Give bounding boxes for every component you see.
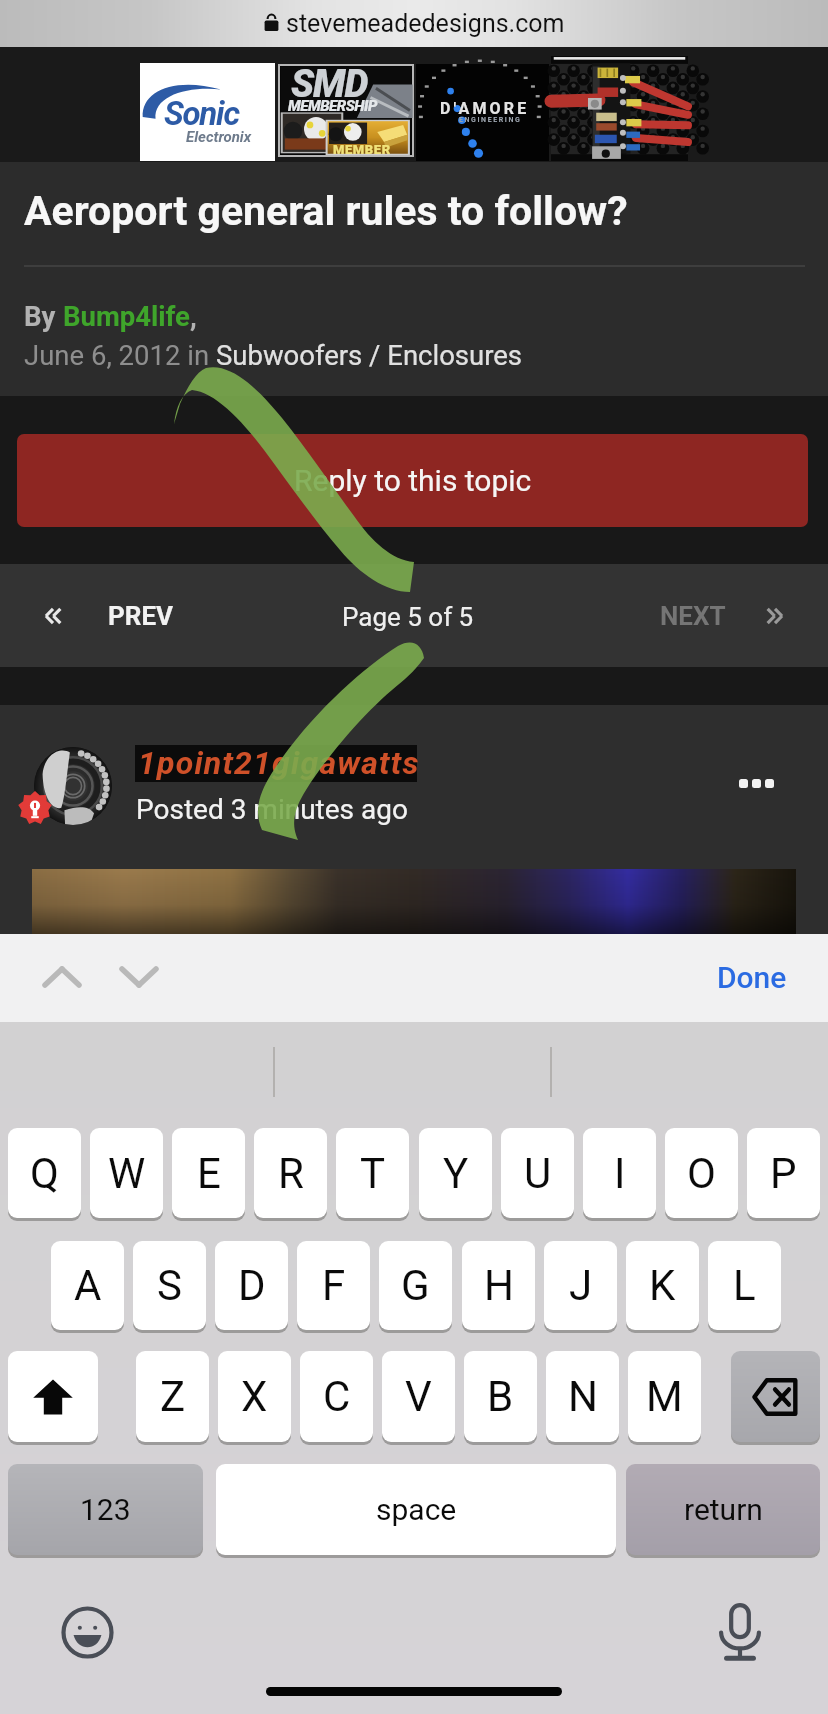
button[interactable]: A: [51, 1241, 124, 1330]
staticText: O: [687, 1149, 716, 1198]
button[interactable]: W: [90, 1128, 163, 1218]
staticText: 123: [80, 1492, 131, 1527]
button[interactable]: U: [501, 1128, 574, 1218]
staticText: Page 5 of 5: [342, 602, 474, 632]
staticText: J: [569, 1261, 593, 1310]
staticText: C: [323, 1372, 351, 1421]
button[interactable]: E: [172, 1128, 245, 1218]
staticText: W: [108, 1149, 146, 1198]
staticText: K: [649, 1261, 676, 1310]
button[interactable]: Shift: [8, 1351, 98, 1442]
staticText: R: [278, 1149, 304, 1198]
button[interactable]: User avatar: [34, 747, 112, 825]
staticText: Posted 3 minutes ago: [136, 793, 408, 826]
staticText: MEMBERSHIP: [288, 97, 377, 115]
staticText: Done: [717, 960, 787, 995]
button[interactable]: P: [747, 1128, 820, 1218]
staticText: Aeroport general rules to follow?: [24, 187, 628, 235]
button[interactable]: Previous field: [30, 946, 94, 1008]
staticText: G: [401, 1261, 430, 1310]
staticText: return: [684, 1492, 763, 1527]
button[interactable]: B: [464, 1351, 537, 1442]
staticText: PREV: [108, 601, 174, 631]
button[interactable]: stevemeadedesigns.com: [0, 0, 828, 47]
staticText: Electronix: [186, 128, 252, 146]
button[interactable]: R: [254, 1128, 327, 1218]
button[interactable]: Reply to this topic: [17, 434, 808, 527]
staticText: stevemeadedesigns.com: [286, 9, 565, 38]
staticText: Y: [443, 1149, 469, 1198]
staticText: E: [197, 1149, 221, 1198]
staticText: H: [484, 1261, 514, 1310]
staticText: I: [614, 1149, 626, 1198]
staticText: ENGINEERING: [459, 116, 522, 124]
button[interactable]: return: [626, 1464, 820, 1555]
button[interactable]: X: [218, 1351, 291, 1442]
staticText: MEMBER: [333, 142, 391, 157]
staticText: F: [322, 1261, 346, 1310]
button[interactable]: Next page: [660, 590, 783, 642]
staticText: Subwoofers / Enclosures: [216, 339, 523, 371]
button[interactable]: J: [544, 1241, 617, 1330]
staticText: V: [405, 1372, 432, 1421]
button[interactable]: K: [626, 1241, 699, 1330]
button[interactable]: D: [215, 1241, 288, 1330]
staticText: Q: [30, 1149, 59, 1198]
staticText: B: [487, 1372, 514, 1421]
button[interactable]: Y: [419, 1128, 492, 1218]
button[interactable]: V: [382, 1351, 455, 1442]
button[interactable]: T: [336, 1128, 409, 1218]
staticText: space: [376, 1492, 457, 1527]
staticText: U: [524, 1149, 552, 1198]
button[interactable]: S: [133, 1241, 206, 1330]
button[interactable]: Backspace: [731, 1351, 820, 1442]
button[interactable]: Done: [700, 944, 804, 1010]
button[interactable]: F: [297, 1241, 370, 1330]
button[interactable]: 1point21gigawatts: [135, 745, 417, 782]
staticText: By: [24, 300, 63, 332]
button[interactable]: Dictation: [710, 1602, 770, 1662]
staticText: 1point21gigawatts: [138, 744, 420, 781]
button[interactable]: I: [583, 1128, 656, 1218]
staticText: L: [733, 1261, 756, 1310]
button[interactable]: Emoji keyboard: [57, 1602, 117, 1662]
button[interactable]: G: [379, 1241, 452, 1330]
button[interactable]: Z: [136, 1351, 209, 1442]
button[interactable]: H: [462, 1241, 535, 1330]
button[interactable]: SMD Membership ad: [278, 64, 414, 157]
staticText: June 6, 2012 in: [24, 339, 216, 371]
button[interactable]: Fuse block ad: [551, 56, 688, 161]
button[interactable]: More options: [722, 757, 790, 809]
button[interactable]: Sonic Electronix ad: [140, 63, 275, 161]
staticText: Z: [160, 1372, 186, 1421]
button[interactable]: Q: [8, 1128, 81, 1218]
button[interactable]: Previous page: [36, 590, 174, 642]
staticText: A: [74, 1261, 102, 1310]
staticText: S: [157, 1261, 182, 1310]
staticText: D'AMORE: [440, 99, 530, 118]
staticText: N: [568, 1372, 598, 1421]
staticText: P: [770, 1149, 797, 1198]
staticText: Reply to this topic: [294, 463, 532, 498]
staticText: X: [241, 1372, 268, 1421]
button[interactable]: D'Amore Engineering ad: [416, 64, 549, 161]
staticText: Sonic: [164, 94, 239, 133]
button[interactable]: N: [546, 1351, 619, 1442]
button[interactable]: M: [628, 1351, 701, 1442]
staticText: NEXT: [660, 601, 726, 631]
staticText: Bump4life: [63, 300, 190, 332]
button[interactable]: 123: [8, 1464, 203, 1555]
staticText: SMD: [291, 62, 368, 107]
staticText: M: [646, 1372, 683, 1421]
button[interactable]: Next field: [107, 946, 171, 1008]
button[interactable]: L: [708, 1241, 781, 1330]
staticText: T: [360, 1149, 386, 1198]
button[interactable]: O: [665, 1128, 738, 1218]
staticText: ,: [190, 300, 197, 332]
button[interactable]: C: [300, 1351, 373, 1442]
button[interactable]: space: [216, 1464, 616, 1555]
staticText: D: [238, 1261, 266, 1310]
